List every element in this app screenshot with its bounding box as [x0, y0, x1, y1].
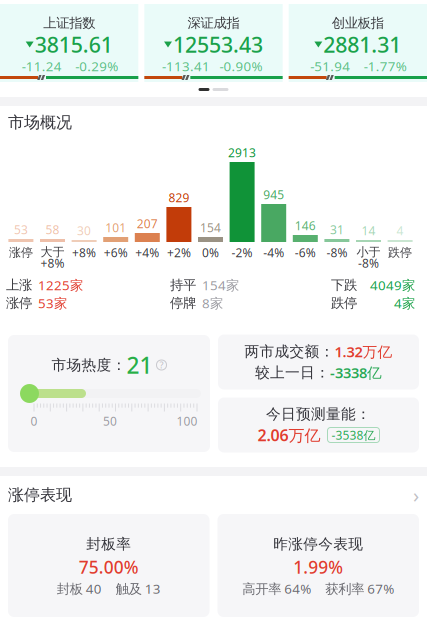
staticText: 较上一日：: [255, 363, 330, 381]
staticText: 封板率: [86, 535, 131, 553]
staticText: 30: [77, 222, 91, 238]
staticText: 2.06万亿: [257, 424, 320, 446]
staticText: 下跌: [331, 277, 357, 293]
staticText: 100: [176, 413, 197, 429]
staticText: 两市成交额：: [244, 342, 334, 360]
staticText: 涨停: [9, 245, 33, 260]
staticText: +2%: [167, 244, 191, 260]
staticText: +8%: [40, 255, 64, 271]
staticText: 21: [126, 350, 152, 380]
staticText: 今日预测量能：: [266, 405, 371, 423]
staticText: 跌停: [331, 295, 357, 311]
staticText: 高开率 64%: [242, 580, 311, 597]
staticText: 207: [137, 215, 158, 231]
staticText: 大于: [40, 245, 64, 259]
button[interactable]: 上证指数: [0, 4, 138, 82]
staticText: 获利率 67%: [325, 580, 394, 597]
staticText: -51.94: [310, 57, 350, 75]
staticText: -113.41: [162, 57, 210, 75]
staticText: 101: [105, 219, 126, 235]
staticText: -0.29%: [75, 57, 118, 75]
staticText: 0%: [202, 244, 219, 260]
staticText: -4%: [263, 244, 284, 260]
staticText: +6%: [104, 244, 128, 260]
staticText: -1.77%: [364, 57, 407, 75]
staticText: -0.90%: [219, 57, 262, 75]
staticText: +4%: [135, 244, 159, 260]
staticText: 停牌: [170, 295, 196, 311]
staticText: 3815.61: [35, 30, 113, 59]
staticText: 2881.31: [323, 30, 401, 59]
staticText: 跌停: [388, 245, 412, 260]
staticText: ?: [159, 359, 163, 371]
staticText: 4049家: [370, 276, 415, 294]
staticText: 4家: [394, 294, 415, 312]
staticText: -3538亿: [331, 427, 375, 443]
staticText: -6%: [295, 244, 316, 260]
staticText: 持平: [170, 277, 196, 293]
staticText: 0: [30, 413, 37, 429]
staticText: 涨停表现: [8, 485, 72, 505]
staticText: 31: [330, 221, 344, 237]
staticText: 829: [168, 189, 189, 205]
staticText: 2913: [228, 144, 256, 160]
staticText: 50: [103, 413, 117, 429]
staticText: 昨涨停今表现: [273, 535, 363, 553]
button[interactable]: 创业板指: [289, 4, 427, 82]
staticText: 146: [295, 217, 316, 233]
staticText: 14: [361, 222, 375, 238]
staticText: -2%: [232, 244, 253, 260]
staticText: 154: [200, 219, 221, 235]
staticText: 小于: [356, 245, 380, 259]
staticText: 涨停: [6, 295, 32, 311]
staticText: 53家: [38, 294, 67, 312]
staticText: 1225家: [38, 276, 83, 294]
staticText: -8%: [358, 255, 379, 271]
staticText: -8%: [326, 244, 347, 260]
staticText: 上证指数: [43, 15, 95, 31]
staticText: 封板 40: [57, 580, 102, 597]
staticText: +8%: [72, 244, 96, 260]
staticText: 创业板指: [332, 15, 384, 31]
staticText: 12553.43: [173, 30, 263, 59]
staticText: 1.99%: [293, 555, 343, 578]
staticText: 市场概况: [8, 113, 72, 132]
staticText: ›: [413, 482, 419, 508]
staticText: 8家: [202, 294, 223, 312]
staticText: 触及 13: [116, 580, 161, 597]
button[interactable]: 涨停表现: [0, 476, 427, 514]
staticText: 深证成指: [187, 15, 239, 31]
staticText: -3338亿: [330, 363, 382, 382]
staticText: 58: [45, 221, 59, 237]
staticText: 1.32万亿: [334, 342, 392, 361]
button[interactable]: 深证成指: [144, 4, 283, 82]
staticText: -11.24: [22, 57, 62, 75]
staticText: 75.00%: [79, 555, 139, 578]
staticText: 53: [14, 221, 28, 237]
staticText: 4: [397, 222, 404, 238]
staticText: 市场热度：: [51, 356, 126, 374]
staticText: 154家: [202, 276, 239, 294]
staticText: 945: [263, 186, 284, 202]
staticText: 上涨: [6, 277, 32, 293]
